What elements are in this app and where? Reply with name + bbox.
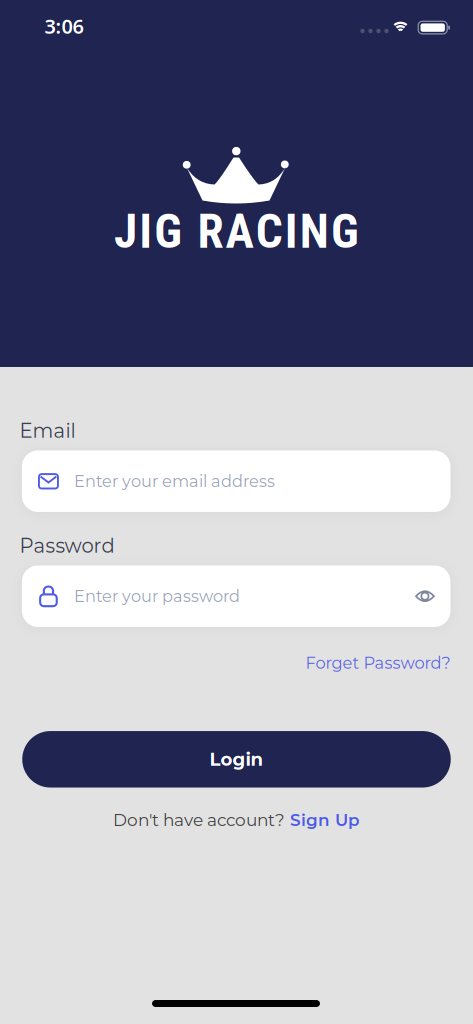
button[interactable]: Sign Up (290, 810, 360, 830)
button[interactable]: Enter your password (22, 565, 450, 627)
staticText: Sign Up (290, 810, 360, 830)
button[interactable]: Show password (415, 589, 450, 604)
button[interactable]: Forget Password? (305, 653, 450, 673)
staticText: Enter your password (74, 586, 240, 606)
staticText: Email (19, 419, 75, 443)
staticText: Login (209, 748, 263, 770)
button[interactable]: Login (22, 731, 451, 787)
staticText: Enter your email address (74, 471, 275, 491)
staticText: Password (19, 534, 114, 558)
button[interactable]: Enter your email address (22, 450, 450, 512)
staticText: JIG RACING (114, 204, 359, 259)
staticText: Forget Password? (305, 653, 450, 673)
staticText: Don't have account? (113, 810, 285, 830)
staticText: 3:06 (44, 13, 83, 39)
